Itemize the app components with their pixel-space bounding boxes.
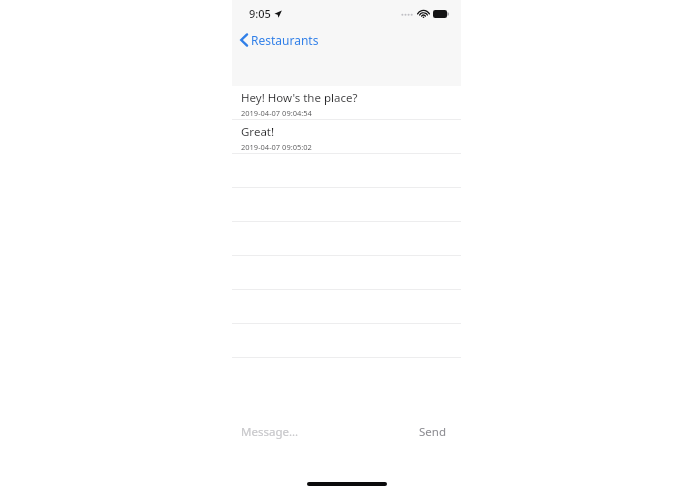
button[interactable]: Message... xyxy=(241,417,413,447)
staticText: Great! xyxy=(241,124,275,140)
staticText: Hey! How's the place? xyxy=(241,90,358,106)
staticText: 2019-04-07 09:05:02 xyxy=(241,142,312,152)
button[interactable]: Send xyxy=(413,419,452,445)
staticText: Restaurants xyxy=(251,32,319,48)
staticText: 9:05 xyxy=(249,6,271,21)
staticText: 2019-04-07 09:04:54 xyxy=(241,108,312,118)
button[interactable]: Great! xyxy=(232,120,461,154)
staticText: Send xyxy=(419,424,446,440)
button[interactable]: Restaurants xyxy=(236,30,323,50)
button[interactable]: Hey! How's the place? xyxy=(232,86,461,120)
staticText: Message... xyxy=(241,424,299,440)
